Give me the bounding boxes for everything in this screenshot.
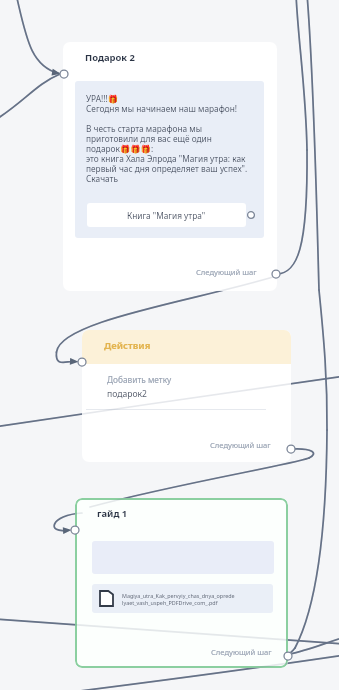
staticText: lyaet_vash_uspeh_PDFDrive_com_.pdf [122,599,218,606]
button[interactable]: Следующий шаг [196,267,257,277]
button[interactable]: Magiya_utra_Kak_pervyiy_chas_dnya_oprede [92,584,273,613]
staticText: Действия [104,339,151,352]
button[interactable]: гайд 1 [75,498,288,668]
staticText: УРА!!!🎁 Сегодня мы начинаем наш марафон!… [86,93,248,184]
staticText: Подарок 2 [85,51,135,64]
staticText: подарок2 [107,388,148,400]
staticText: Книга "Магия утра" [127,210,206,221]
staticText: гайд 1 [97,507,128,520]
button[interactable]: Следующий шаг [211,647,272,657]
button[interactable]: Подарок 2 [63,42,277,291]
button[interactable]: Следующий шаг [210,440,271,450]
button[interactable]: Книга "Магия утра" [87,203,246,227]
staticText: Добавить метку [107,374,172,385]
button[interactable]: Действия [82,330,291,462]
staticText: Magiya_utra_Kak_pervyiy_chas_dnya_oprede [122,592,235,599]
